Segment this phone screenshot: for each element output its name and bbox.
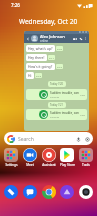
staticText: Tools bbox=[82, 163, 90, 167]
staticText: Hey, what's up? bbox=[28, 46, 53, 51]
other: Call bbox=[79, 37, 83, 41]
staticText: Today 7:21 bbox=[50, 103, 64, 107]
staticText: 7:11 bbox=[49, 56, 54, 59]
other: Video call bbox=[73, 37, 77, 41]
button[interactable]: Tools bbox=[77, 148, 95, 167]
button[interactable]: Back bbox=[24, 31, 89, 131]
staticText: Hi bbox=[28, 73, 32, 78]
staticText: 7:26 bbox=[11, 2, 20, 8]
button[interactable]: Assistant bbox=[40, 148, 58, 167]
staticText: online bbox=[40, 39, 49, 43]
button[interactable]: Sudden trouble, can bbox=[28, 110, 85, 119]
staticText: Meet bbox=[26, 163, 34, 167]
button[interactable]: Meet bbox=[21, 148, 39, 167]
staticText: 7:10 bbox=[57, 47, 62, 50]
button[interactable]: Messages bbox=[22, 184, 38, 200]
staticText: How's it going? bbox=[28, 64, 53, 69]
other: Back bbox=[26, 37, 30, 41]
other: Google Lens bbox=[85, 137, 90, 142]
staticText: Sudden trouble, can bbox=[50, 91, 79, 95]
staticText: 7:20 bbox=[80, 113, 85, 116]
button[interactable]: Search bbox=[4, 132, 93, 145]
staticText: Sudden trouble, can bbox=[50, 111, 79, 115]
button[interactable]: Play Store bbox=[58, 148, 76, 167]
staticText: Hey there! bbox=[28, 55, 45, 60]
staticText: 4:32 PM bbox=[50, 115, 59, 118]
staticText: 4:32 PM bbox=[50, 95, 59, 98]
button[interactable]: Sudden trouble, can bbox=[28, 90, 85, 99]
staticText: Play Store bbox=[60, 163, 75, 167]
staticText: Wednesday, Oct 20 bbox=[19, 17, 78, 26]
staticText: Assistant bbox=[42, 163, 56, 167]
button[interactable]: Photos bbox=[59, 184, 75, 200]
button[interactable]: Chrome bbox=[41, 184, 57, 200]
staticText: 7:20 bbox=[80, 93, 85, 96]
other: More options bbox=[84, 37, 87, 40]
staticText: 7:13 bbox=[36, 74, 41, 77]
staticText: Settings bbox=[5, 163, 18, 167]
staticText: Alex Johnson bbox=[40, 34, 65, 39]
staticText: Today 7:20 bbox=[50, 82, 64, 86]
staticText: Search bbox=[18, 136, 34, 143]
other: Voice search bbox=[76, 137, 81, 142]
staticText: 7:12 bbox=[57, 65, 62, 68]
button[interactable]: Settings bbox=[2, 148, 20, 167]
button[interactable]: Phone bbox=[3, 184, 19, 200]
button[interactable]: Camera bbox=[78, 184, 94, 200]
